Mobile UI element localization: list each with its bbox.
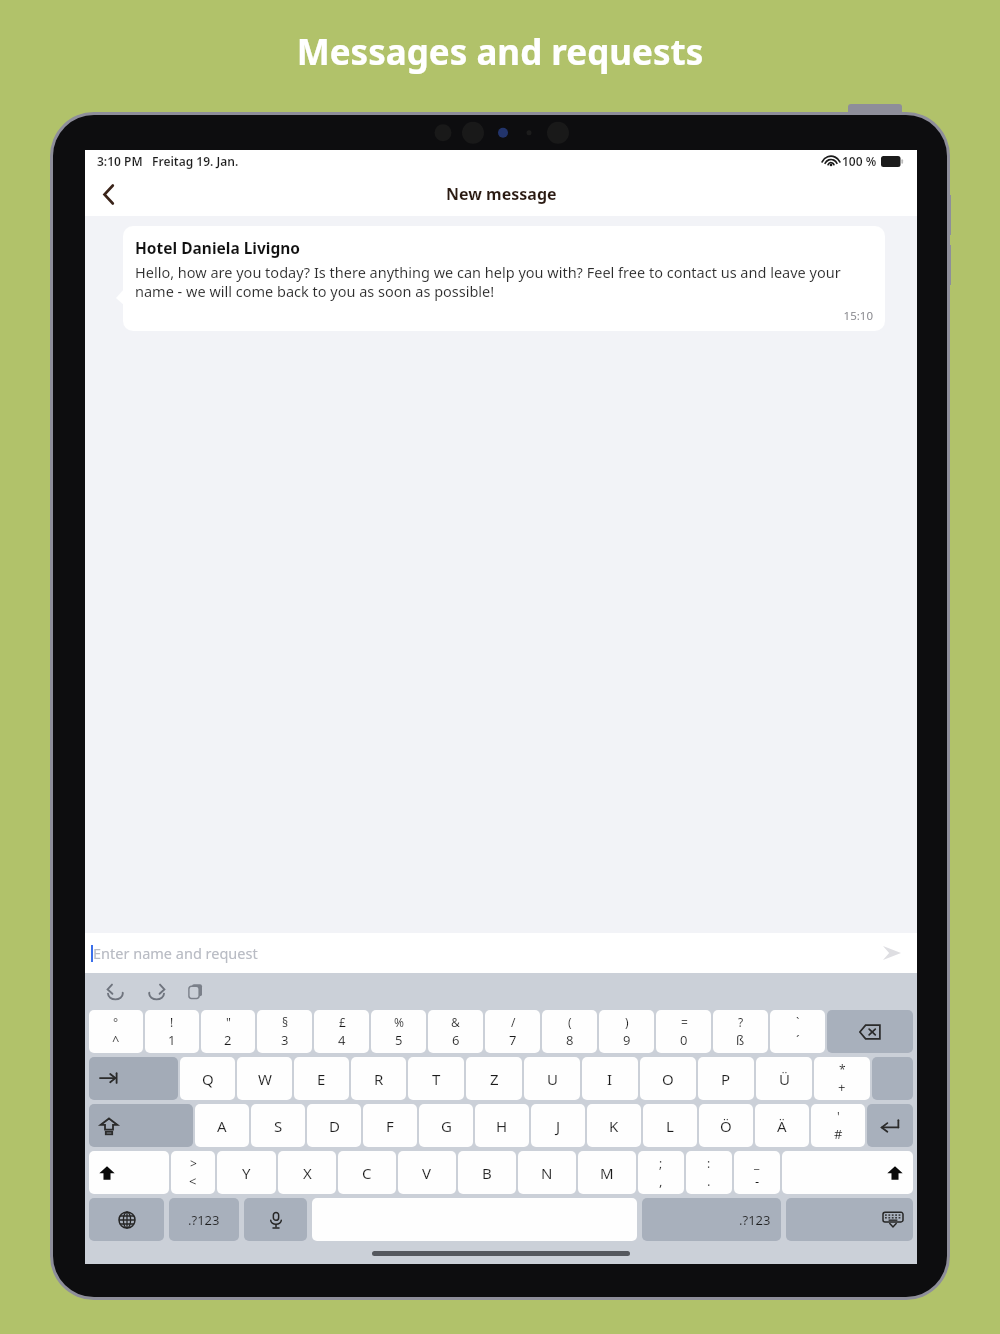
- button[interactable]: ;: [638, 1151, 684, 1194]
- button[interactable]: Ä: [755, 1104, 809, 1147]
- button[interactable]: ": [201, 1010, 255, 1053]
- button[interactable]: A: [195, 1104, 249, 1147]
- button[interactable]: £: [314, 1010, 369, 1053]
- button[interactable]: Return: [867, 1104, 913, 1147]
- button[interactable]: /: [485, 1010, 540, 1053]
- button[interactable]: S: [251, 1104, 305, 1147]
- button[interactable]: J: [531, 1104, 585, 1147]
- button[interactable]: G: [419, 1104, 473, 1147]
- button[interactable]: I: [582, 1057, 638, 1100]
- button[interactable]: *: [814, 1057, 870, 1100]
- button[interactable]: Send: [877, 938, 907, 968]
- button[interactable]: O: [640, 1057, 696, 1100]
- button[interactable]: U: [524, 1057, 580, 1100]
- button[interactable]: Q: [180, 1057, 235, 1100]
- button[interactable]: _: [734, 1151, 780, 1194]
- button[interactable]: &: [428, 1010, 483, 1053]
- button[interactable]: L: [643, 1104, 697, 1147]
- button[interactable]: E: [294, 1057, 349, 1100]
- button[interactable]: Undo: [103, 978, 129, 1004]
- button[interactable]: §: [257, 1010, 312, 1053]
- staticText: U: [547, 1069, 558, 1089]
- button[interactable]: `: [770, 1010, 825, 1053]
- staticText: Y: [242, 1163, 251, 1183]
- button[interactable]: (: [542, 1010, 597, 1053]
- button[interactable]: T: [408, 1057, 464, 1100]
- staticText: K: [609, 1116, 619, 1136]
- button[interactable]: °: [89, 1010, 143, 1053]
- staticText: T: [432, 1069, 441, 1089]
- staticText: !: [170, 1014, 174, 1030]
- staticText: E: [317, 1069, 326, 1089]
- staticText: _: [754, 1155, 760, 1171]
- button[interactable]: H: [475, 1104, 529, 1147]
- button[interactable]: ): [599, 1010, 654, 1053]
- button[interactable]: X: [278, 1151, 336, 1194]
- button[interactable]: Dictate: [244, 1198, 307, 1241]
- staticText: ?: [738, 1014, 744, 1030]
- button[interactable]: C: [338, 1151, 396, 1194]
- button[interactable]: :: [686, 1151, 732, 1194]
- button[interactable]: P: [698, 1057, 754, 1100]
- button[interactable]: Z: [466, 1057, 522, 1100]
- button[interactable]: Hide keyboard: [786, 1198, 913, 1241]
- button[interactable]: Hotel Daniela Livigno: [123, 226, 885, 331]
- button[interactable]: M: [578, 1151, 636, 1194]
- button[interactable]: .?123: [169, 1198, 239, 1241]
- button[interactable]: Backspace: [827, 1010, 913, 1053]
- button[interactable]: ': [811, 1104, 865, 1147]
- staticText: 7: [509, 1031, 517, 1049]
- button[interactable]: R: [351, 1057, 406, 1100]
- button[interactable]: N: [518, 1151, 576, 1194]
- button[interactable]: Shift: [89, 1151, 169, 1194]
- staticText: 2: [224, 1031, 232, 1049]
- staticText: %: [394, 1014, 404, 1030]
- staticText: 0: [680, 1031, 688, 1049]
- button[interactable]: ?: [713, 1010, 768, 1053]
- staticText: O: [662, 1069, 674, 1089]
- button[interactable]: Caps lock: [89, 1104, 193, 1147]
- staticText: D: [329, 1116, 340, 1136]
- button[interactable]: V: [398, 1151, 456, 1194]
- button[interactable]: Tab: [89, 1057, 178, 1100]
- button[interactable]: Ü: [756, 1057, 812, 1100]
- staticText: 3: [281, 1031, 289, 1049]
- button[interactable]: D: [307, 1104, 361, 1147]
- staticText: A: [217, 1116, 227, 1136]
- button[interactable]: Enter name and request: [91, 943, 258, 963]
- staticText: .?123: [739, 1211, 771, 1229]
- button[interactable]: .?123: [642, 1198, 781, 1241]
- staticText: £: [339, 1014, 346, 1030]
- staticText: 5: [395, 1031, 403, 1049]
- button[interactable]: F: [363, 1104, 417, 1147]
- button[interactable]: %: [371, 1010, 426, 1053]
- staticText: &: [451, 1014, 460, 1030]
- staticText: V: [422, 1163, 432, 1183]
- staticText: 6: [452, 1031, 460, 1049]
- button[interactable]: B: [458, 1151, 516, 1194]
- staticText: °: [113, 1014, 119, 1030]
- button[interactable]: Language: [89, 1198, 164, 1241]
- staticText: ;: [659, 1155, 663, 1171]
- staticText: X: [303, 1163, 312, 1183]
- button[interactable]: =: [656, 1010, 711, 1053]
- button[interactable]: !: [145, 1010, 199, 1053]
- button[interactable]: Y: [217, 1151, 276, 1194]
- staticText: 15:10: [135, 308, 873, 324]
- staticText: Ü: [779, 1069, 790, 1089]
- staticText: .: [707, 1172, 711, 1190]
- staticText: I: [607, 1069, 613, 1089]
- button[interactable]: Redo: [143, 978, 169, 1004]
- staticText: :: [707, 1155, 711, 1171]
- button[interactable]: Back: [85, 172, 133, 216]
- button[interactable]: K: [587, 1104, 641, 1147]
- staticText: Ö: [720, 1116, 732, 1136]
- button[interactable]: >: [171, 1151, 215, 1194]
- button[interactable]: W: [237, 1057, 292, 1100]
- button[interactable]: Ö: [699, 1104, 753, 1147]
- staticText: ': [837, 1108, 840, 1124]
- button[interactable]: Paste: [183, 978, 209, 1004]
- button[interactable]: [872, 1057, 913, 1100]
- button[interactable]: Shift: [782, 1151, 913, 1194]
